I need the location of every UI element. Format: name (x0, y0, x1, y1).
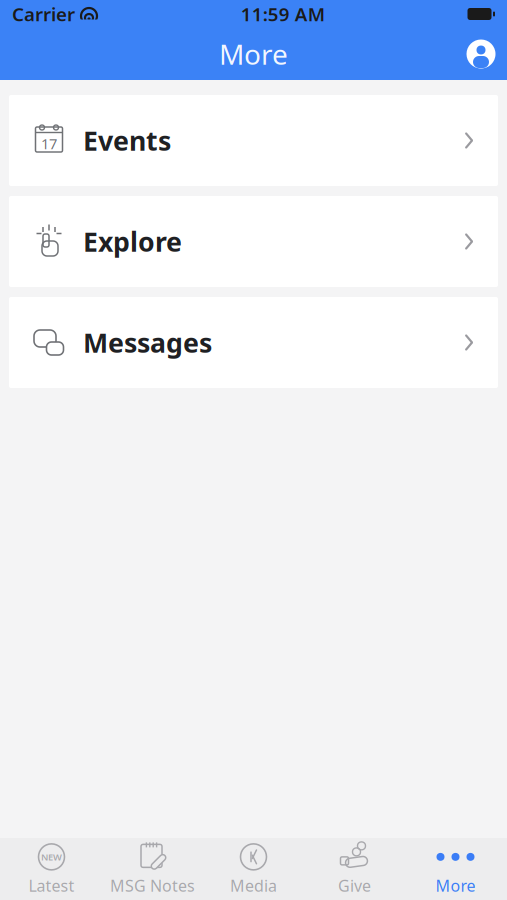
button[interactable]: More (405, 838, 506, 900)
staticText: Carrier (12, 2, 75, 26)
staticText: NEW (41, 851, 62, 863)
button[interactable]: Profile (455, 28, 507, 80)
button[interactable]: NEW (1, 838, 102, 900)
staticText: Latest (28, 875, 74, 896)
staticText: Messages (83, 325, 212, 360)
button[interactable]: MSG Notes (102, 838, 203, 900)
staticText: Give (338, 875, 371, 896)
button[interactable]: Give (304, 838, 405, 900)
button[interactable]: Media (203, 838, 304, 900)
staticText: Events (83, 123, 171, 158)
staticText: 17 (41, 134, 57, 153)
staticText: Explore (83, 224, 182, 259)
button[interactable]: Explore (9, 196, 498, 287)
button[interactable]: 17 (9, 95, 498, 186)
staticText: MSG Notes (110, 875, 195, 896)
staticText: More (219, 35, 288, 73)
staticText: Media (230, 875, 277, 896)
staticText: 11:59 AM (241, 2, 325, 26)
button[interactable]: Messages (9, 297, 498, 388)
staticText: More (435, 875, 475, 896)
